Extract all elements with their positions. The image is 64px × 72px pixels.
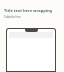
staticText: Title text here wrapping [4, 8, 53, 13]
staticText: Subtitle line [4, 15, 21, 19]
